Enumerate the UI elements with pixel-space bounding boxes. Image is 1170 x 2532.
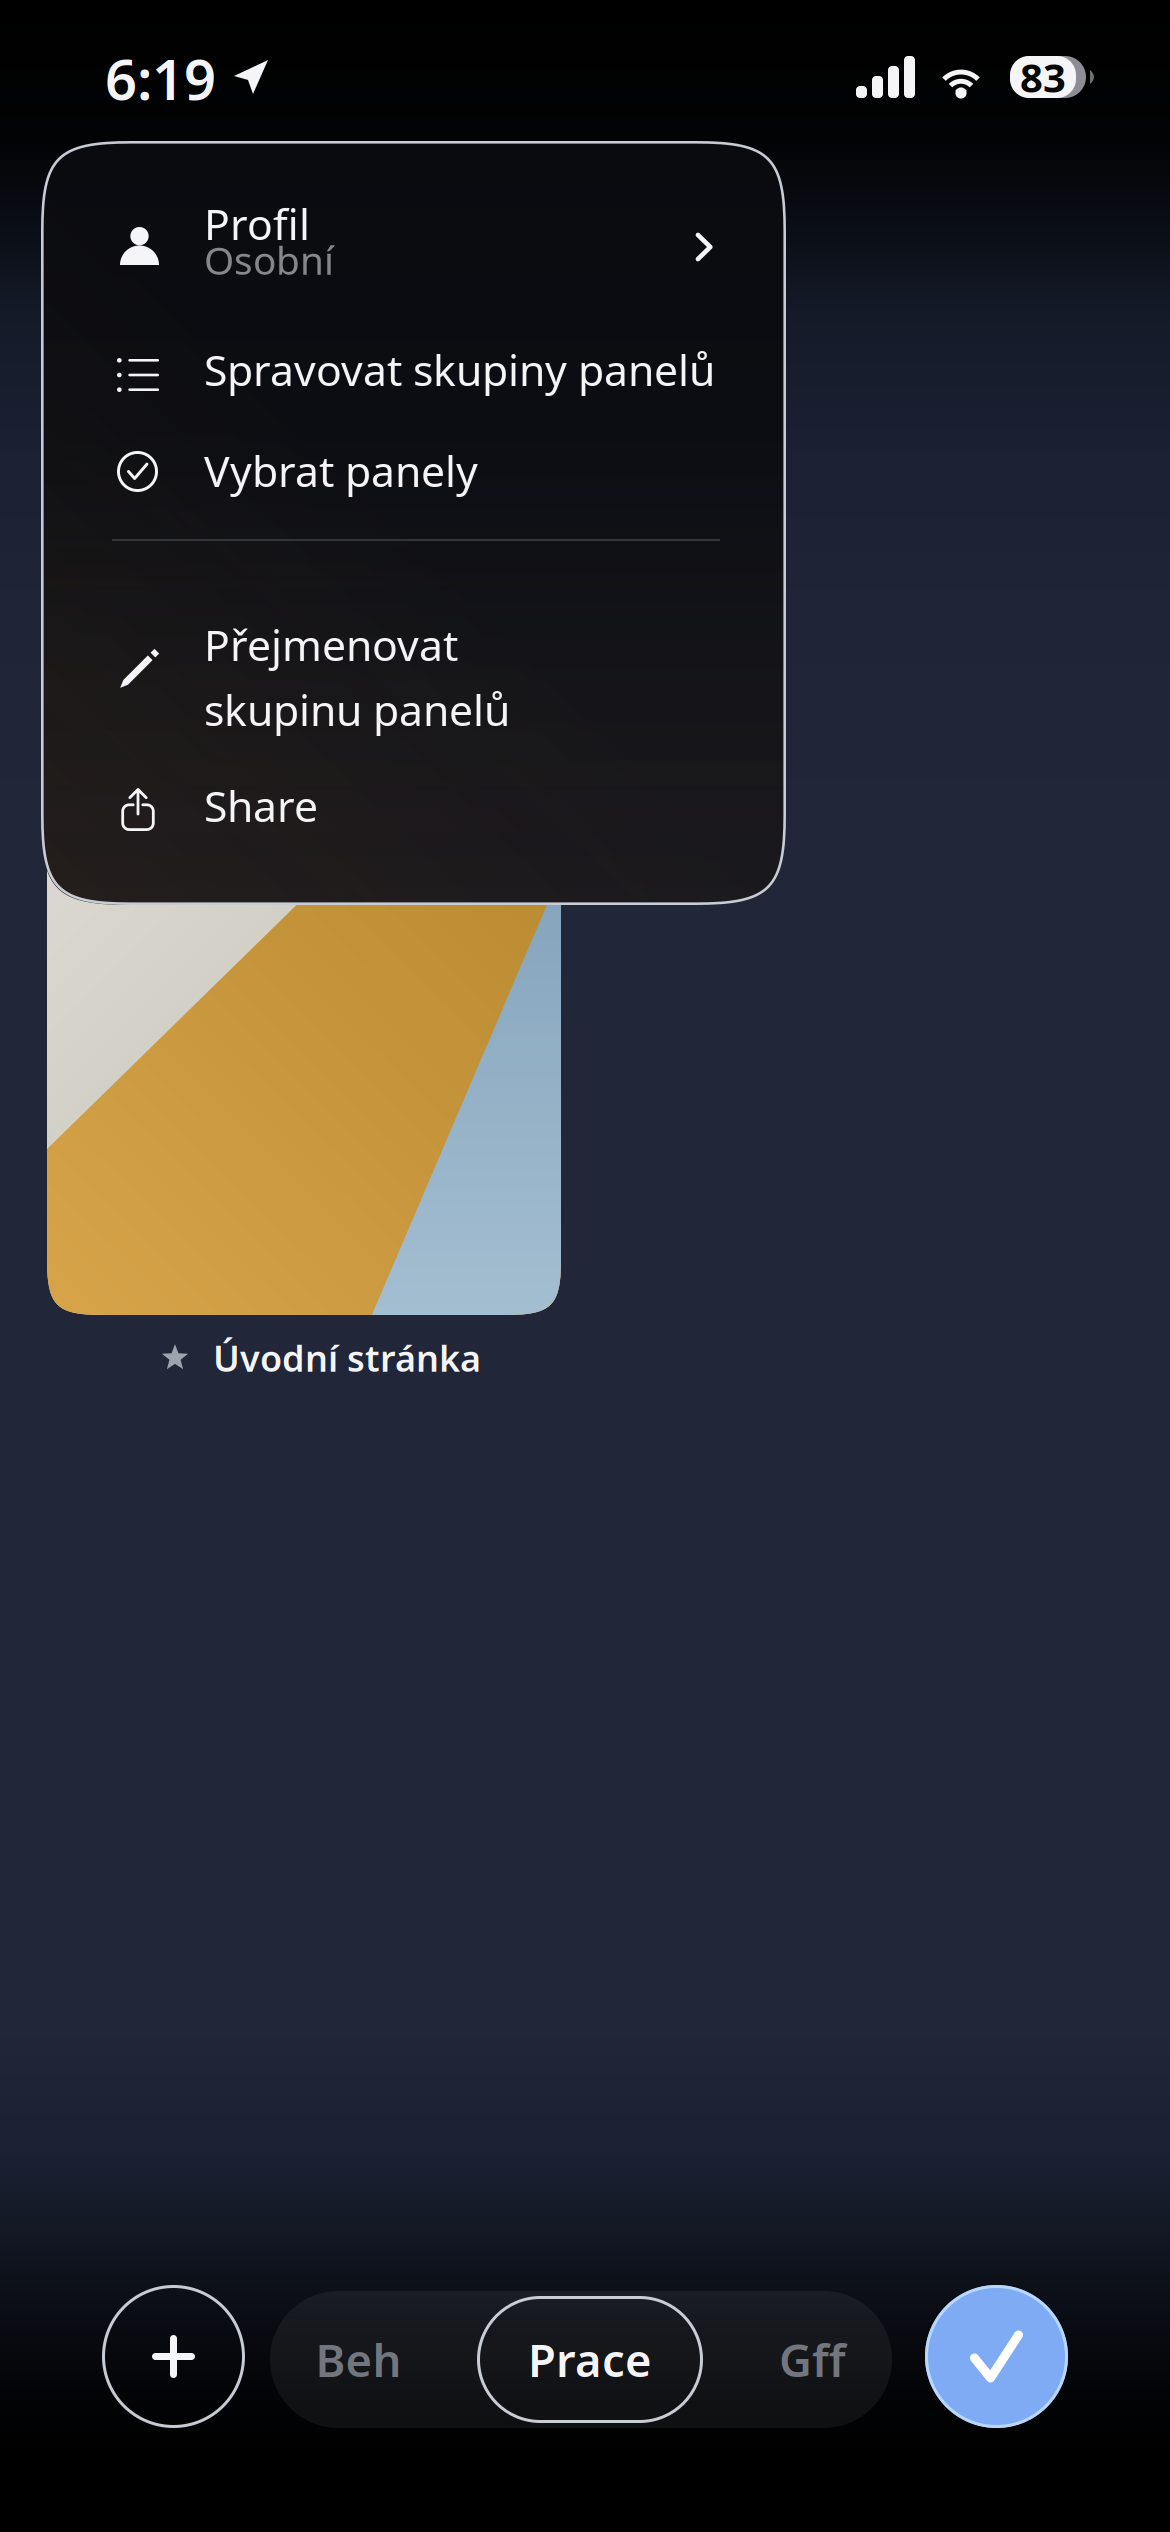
staticText: skupinu panelů bbox=[204, 681, 510, 738]
staticText: Prace bbox=[528, 2329, 652, 2390]
button[interactable]: Prace bbox=[477, 2296, 703, 2423]
staticText: 6:19 bbox=[105, 41, 216, 115]
staticText: Vybrat panely bbox=[204, 442, 478, 499]
button[interactable]: Spravovat skupiny panelů bbox=[41, 301, 786, 406]
button[interactable]: Profil bbox=[41, 151, 786, 301]
button[interactable]: Přejmenovat bbox=[41, 576, 786, 751]
button[interactable]: Done bbox=[925, 2285, 1068, 2428]
staticText: Profil bbox=[204, 195, 310, 252]
button[interactable]: New tab bbox=[102, 2285, 245, 2428]
staticText: Osobní bbox=[204, 234, 334, 285]
staticText: Spravovat skupiny panelů bbox=[204, 341, 715, 398]
button[interactable]: Gff bbox=[718, 2291, 907, 2428]
staticText: 83 bbox=[1020, 50, 1066, 103]
button[interactable]: Beh bbox=[270, 2291, 447, 2428]
button[interactable]: Share bbox=[41, 756, 786, 871]
button[interactable]: Vybrat panely bbox=[41, 411, 786, 516]
staticText: Přejmenovat bbox=[204, 616, 458, 673]
staticText: Share bbox=[204, 777, 318, 834]
staticText: Gff bbox=[779, 2329, 846, 2390]
staticText: Úvodní stránka bbox=[213, 1334, 481, 1382]
staticText: Beh bbox=[315, 2329, 401, 2390]
